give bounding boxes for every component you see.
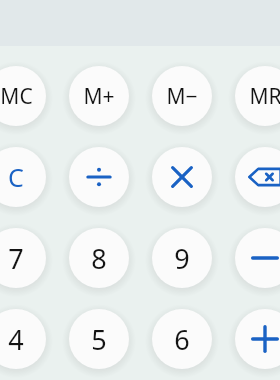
staticText: MC (0, 82, 33, 111)
staticText: 5 (91, 321, 107, 358)
button[interactable]: Minus (235, 228, 280, 288)
button[interactable]: 6 (152, 309, 212, 369)
staticText: 4 (8, 321, 24, 358)
staticText: M+ (83, 82, 115, 111)
staticText: 6 (174, 321, 190, 358)
button[interactable]: 7 (0, 228, 46, 288)
button[interactable]: MC (0, 66, 46, 126)
staticText: MR (249, 82, 280, 111)
button[interactable]: Backspace (235, 147, 280, 207)
button[interactable]: 4 (0, 309, 46, 369)
staticText: C (8, 160, 24, 194)
button[interactable]: C (0, 147, 46, 207)
staticText: 8 (91, 240, 107, 277)
button[interactable]: 9 (152, 228, 212, 288)
button[interactable]: Divide (69, 147, 129, 207)
button[interactable]: MR (235, 66, 280, 126)
button[interactable]: Plus (235, 309, 280, 369)
other: Backspace (248, 160, 280, 194)
button[interactable]: Multiply (152, 147, 212, 207)
button[interactable]: M+ (69, 66, 129, 126)
staticText: 7 (8, 240, 24, 277)
button[interactable]: 8 (69, 228, 129, 288)
button[interactable]: M− (152, 66, 212, 126)
staticText: 9 (174, 240, 190, 277)
staticText: M− (166, 82, 198, 111)
button[interactable]: 5 (69, 309, 129, 369)
